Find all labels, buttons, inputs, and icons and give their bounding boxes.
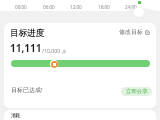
staticText: 目标已达成! xyxy=(11,86,43,94)
staticText: 步 xyxy=(62,49,67,54)
staticText: 18:00 xyxy=(98,4,110,10)
staticText: 消耗 xyxy=(11,113,21,119)
staticText: /10,000 xyxy=(42,47,61,54)
staticText: 立即分享 xyxy=(126,88,148,95)
button[interactable]: 立即分享 xyxy=(121,87,152,96)
staticText: 12:00 xyxy=(70,4,82,10)
staticText: 06:00 xyxy=(43,4,55,10)
staticText: 目标进度 xyxy=(10,28,44,39)
staticText: 修改目标 xyxy=(119,28,143,36)
button[interactable]: 修改目标 xyxy=(116,25,153,39)
staticText: 11,111 xyxy=(10,41,42,55)
staticText: 24:00 xyxy=(125,4,137,10)
staticText: 00:00 xyxy=(15,4,27,10)
